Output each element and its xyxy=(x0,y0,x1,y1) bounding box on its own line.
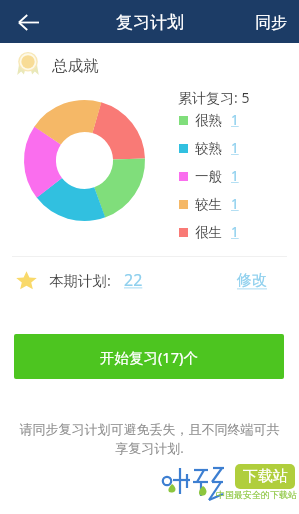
button[interactable]: 较熟 xyxy=(179,136,239,160)
staticText: 22 xyxy=(124,269,143,291)
staticText: 开始复习(17)个 xyxy=(100,347,198,367)
staticText: 下载站 xyxy=(243,467,288,486)
staticText: 本期计划: xyxy=(49,270,111,290)
staticText: 1 xyxy=(231,139,239,157)
button[interactable]: 一般 xyxy=(179,164,239,188)
staticText: 请同步复习计划可避免丢失，且不同终端可共享复习计划. xyxy=(19,421,280,457)
staticText: 1 xyxy=(231,223,239,241)
staticText: 1 xyxy=(231,167,239,185)
staticText: 很熟 xyxy=(195,112,222,129)
staticText: 复习计划 xyxy=(116,12,184,33)
button[interactable]: 修改 xyxy=(237,271,267,290)
staticText: 累计复习: 5 xyxy=(178,88,250,107)
button[interactable]: 很熟 xyxy=(179,108,239,132)
staticText: 1 xyxy=(231,195,239,213)
button[interactable]: 开始复习(17)个 xyxy=(14,334,284,379)
button[interactable]: 总成就 xyxy=(17,51,99,77)
staticText: 较生 xyxy=(195,196,222,213)
button[interactable]: 同步 xyxy=(241,2,299,42)
staticText: 总成就 xyxy=(52,56,99,76)
staticText: 中国最安全的下载站 xyxy=(216,489,297,500)
staticText: 同步 xyxy=(255,13,287,33)
button[interactable]: 22 xyxy=(124,269,143,291)
button[interactable]: Back xyxy=(8,1,49,42)
staticText: 一般 xyxy=(195,168,222,185)
staticText: 1 xyxy=(231,111,239,129)
button[interactable]: 很生 xyxy=(179,220,239,244)
button[interactable]: 较生 xyxy=(179,192,239,216)
staticText: 很生 xyxy=(195,224,222,241)
staticText: 修改 xyxy=(237,271,267,290)
staticText: 较熟 xyxy=(195,140,222,157)
